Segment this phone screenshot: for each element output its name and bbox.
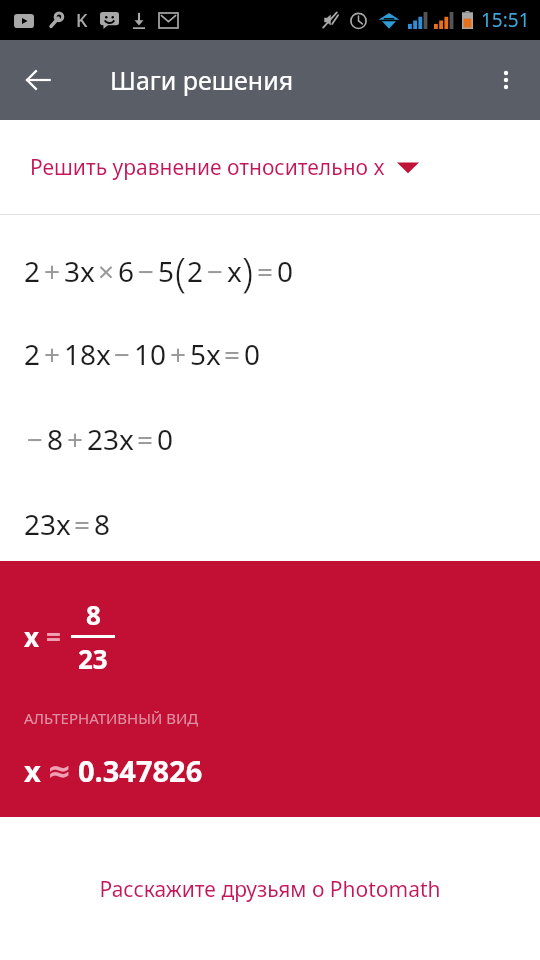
staticText: + (44, 252, 61, 290)
staticText: 5x (190, 335, 221, 373)
staticText: 8 (94, 505, 111, 543)
staticText: 23x (24, 505, 71, 543)
staticText: = (257, 252, 274, 290)
button[interactable]: More options (478, 52, 534, 108)
staticText: + (67, 420, 84, 458)
staticText: ( (175, 244, 187, 298)
staticText: × (98, 252, 115, 290)
staticText: 6 (118, 252, 135, 290)
staticText: 5 (158, 252, 175, 290)
staticText: 2 (24, 252, 41, 290)
staticText: 23 (78, 641, 108, 676)
staticText: АЛЬТЕРНАТИВНЫЙ ВИД (24, 708, 199, 728)
staticText: 2 (187, 252, 204, 290)
staticText: = (74, 505, 91, 543)
staticText: Расскажите друзьям о Photomath (99, 875, 441, 904)
staticText: − (207, 252, 224, 290)
staticText: x (24, 751, 41, 790)
staticText: + (44, 335, 61, 373)
staticText: 2 (24, 335, 41, 373)
staticText: x (227, 252, 242, 290)
staticText: 0 (157, 420, 174, 458)
staticText: 0.347826 (78, 751, 203, 790)
staticText: 8 (86, 597, 101, 632)
staticText: − (27, 420, 44, 458)
staticText: 23x (87, 420, 134, 458)
button[interactable]: Расскажите друзьям о Photomath (0, 859, 540, 919)
staticText: 0 (277, 252, 294, 290)
staticText: x (24, 619, 40, 654)
staticText: + (170, 335, 187, 373)
button[interactable]: Back (10, 52, 66, 108)
staticText: 15:51 (481, 7, 530, 33)
staticText: = (46, 619, 61, 654)
staticText: − (114, 335, 131, 373)
staticText: ≈ (47, 754, 72, 788)
staticText: 10 (134, 335, 167, 373)
staticText: Шаги решения (110, 63, 294, 97)
staticText: 0 (244, 335, 261, 373)
staticText: Решить уравнение относительно x (30, 153, 385, 182)
staticText: − (138, 252, 155, 290)
staticText: = (137, 420, 154, 458)
staticText: ) (242, 244, 254, 298)
staticText: 3x (64, 252, 95, 290)
staticText: = (224, 335, 241, 373)
button[interactable]: Решить уравнение относительно x (0, 120, 540, 214)
staticText: 18x (64, 335, 111, 373)
staticText: 8 (47, 420, 64, 458)
staticText: K (76, 8, 88, 33)
